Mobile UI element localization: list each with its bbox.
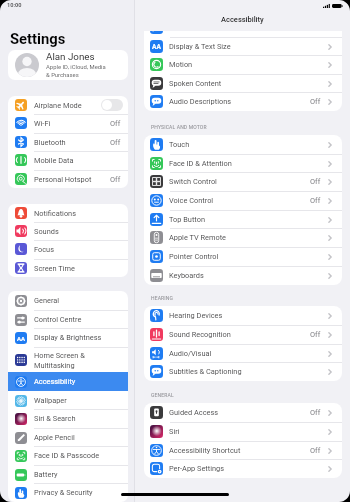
staticText: Off: [310, 177, 321, 186]
button[interactable]: Spoken Content: [144, 74, 342, 93]
button[interactable]: Pointer Control: [144, 247, 342, 266]
staticText: Bluetooth: [34, 138, 66, 147]
staticText: Voice Control: [169, 196, 214, 205]
button[interactable]: Wi-Fi: [8, 114, 128, 132]
staticText: Off: [110, 119, 121, 128]
staticText: Mobile Data: [34, 156, 74, 165]
button[interactable]: Face ID & Attention: [144, 154, 342, 173]
staticText: VoiceOver: [169, 23, 203, 32]
staticText: Focus: [34, 245, 54, 254]
button[interactable]: Airplane Mode: [8, 96, 128, 114]
staticText: Accessibility: [34, 377, 76, 386]
button[interactable]: Notifications: [8, 204, 128, 222]
button[interactable]: Audio/Visual: [144, 344, 342, 363]
button[interactable]: Apple TV Remote: [144, 228, 342, 247]
button[interactable]: Accessibility Shortcut: [144, 441, 342, 460]
staticText: Notifications: [34, 209, 77, 218]
button[interactable]: Hearing Devices: [144, 306, 342, 325]
button[interactable]: VoiceOver: [144, 18, 342, 37]
button[interactable]: Subtitles & Captioning: [144, 362, 342, 381]
staticText: Battery: [34, 470, 58, 479]
button[interactable]: Screen Time: [8, 259, 128, 277]
staticText: Guided Access: [169, 408, 219, 417]
button[interactable]: Face ID & Passcode: [8, 446, 128, 465]
staticText: General: [34, 296, 60, 305]
staticText: Wallpaper: [34, 396, 67, 405]
button[interactable]: Siri & Search: [8, 409, 128, 428]
staticText: Off: [310, 330, 321, 339]
staticText: Face ID & Passcode: [34, 451, 100, 460]
staticText: HEARING: [151, 295, 174, 301]
staticText: Sound Recognition: [169, 330, 231, 339]
button[interactable]: Accessibility: [8, 372, 128, 391]
staticText: Off: [110, 175, 121, 184]
staticText: Pointer Control: [169, 252, 219, 261]
button[interactable]: Siri: [144, 422, 342, 441]
button[interactable]: Guided Access: [144, 403, 342, 422]
staticText: Switch Control: [169, 177, 217, 186]
staticText: Per-App Settings: [169, 464, 225, 473]
staticText: Display & Brightness: [34, 333, 102, 342]
staticText: Face ID & Attention: [169, 159, 232, 168]
staticText: Apple Pencil: [34, 433, 75, 442]
button[interactable]: Voice Control: [144, 191, 342, 210]
button[interactable]: Sound Recognition: [144, 325, 342, 344]
staticText: Personal Hotspot: [34, 175, 92, 184]
button[interactable]: Audio Descriptions: [144, 92, 342, 111]
staticText: Control Centre: [34, 315, 82, 324]
button[interactable]: Keyboards: [144, 266, 342, 285]
staticText: Sounds: [34, 227, 59, 236]
button[interactable]: Privacy & Security: [8, 483, 128, 502]
staticText: Subtitles & Captioning: [169, 367, 242, 376]
staticText: Apple TV Remote: [169, 233, 227, 242]
staticText: Settings: [10, 30, 66, 47]
staticText: Home Screen & Multitasking: [34, 351, 85, 370]
staticText: Motion: [169, 60, 193, 69]
staticText: AA: [152, 43, 161, 51]
button[interactable]: Per-App Settings: [144, 459, 342, 478]
staticText: Off: [310, 408, 321, 417]
staticText: Display & Text Size: [169, 42, 231, 51]
button[interactable]: AA: [144, 37, 342, 56]
staticText: Audio/Visual: [169, 349, 212, 358]
staticText: Hearing Devices: [169, 311, 223, 320]
staticText: GENERAL: [151, 392, 174, 398]
button[interactable]: Apple Pencil: [8, 428, 128, 447]
button[interactable]: Personal Hotspot: [8, 170, 128, 188]
staticText: Top Button: [169, 215, 205, 224]
button[interactable]: Touch: [144, 135, 342, 154]
staticText: Off: [310, 97, 321, 106]
button[interactable]: Mobile Data: [8, 151, 128, 169]
button[interactable]: Focus: [8, 240, 128, 258]
staticText: Wi-Fi: [34, 119, 51, 128]
staticText: Audio Descriptions: [169, 97, 232, 106]
staticText: Apple ID, iCloud, Media & Purchases: [46, 64, 106, 79]
button[interactable]: Alan Jones: [8, 50, 128, 80]
staticText: Accessibility: [221, 15, 264, 24]
staticText: Alan Jones: [46, 51, 95, 62]
staticText: Off: [310, 196, 321, 205]
button[interactable]: General: [8, 291, 128, 310]
button[interactable]: Battery: [8, 465, 128, 484]
staticText: AA: [17, 335, 26, 342]
button[interactable]: Home Screen & Multitasking: [8, 347, 128, 373]
staticText: Touch: [169, 140, 190, 149]
staticText: Siri: [169, 427, 180, 436]
staticText: Off: [110, 138, 121, 147]
button[interactable]: AA: [8, 328, 128, 347]
button[interactable]: Switch Control: [144, 172, 342, 191]
staticText: Siri & Search: [34, 414, 76, 423]
staticText: Spoken Content: [169, 79, 222, 88]
staticText: Airplane Mode: [34, 101, 82, 110]
button[interactable]: Top Button: [144, 210, 342, 229]
staticText: Keyboards: [169, 271, 204, 280]
button[interactable]: Control Centre: [8, 310, 128, 329]
button[interactable]: Wallpaper: [8, 391, 128, 410]
button[interactable]: Motion: [144, 55, 342, 74]
button[interactable]: Sounds: [8, 222, 128, 240]
staticText: Off: [310, 23, 321, 32]
staticText: Privacy & Security: [34, 488, 93, 497]
button[interactable]: Bluetooth: [8, 133, 128, 151]
button[interactable]: Airplane Mode toggle: [101, 99, 123, 111]
staticText: Screen Time: [34, 264, 75, 273]
